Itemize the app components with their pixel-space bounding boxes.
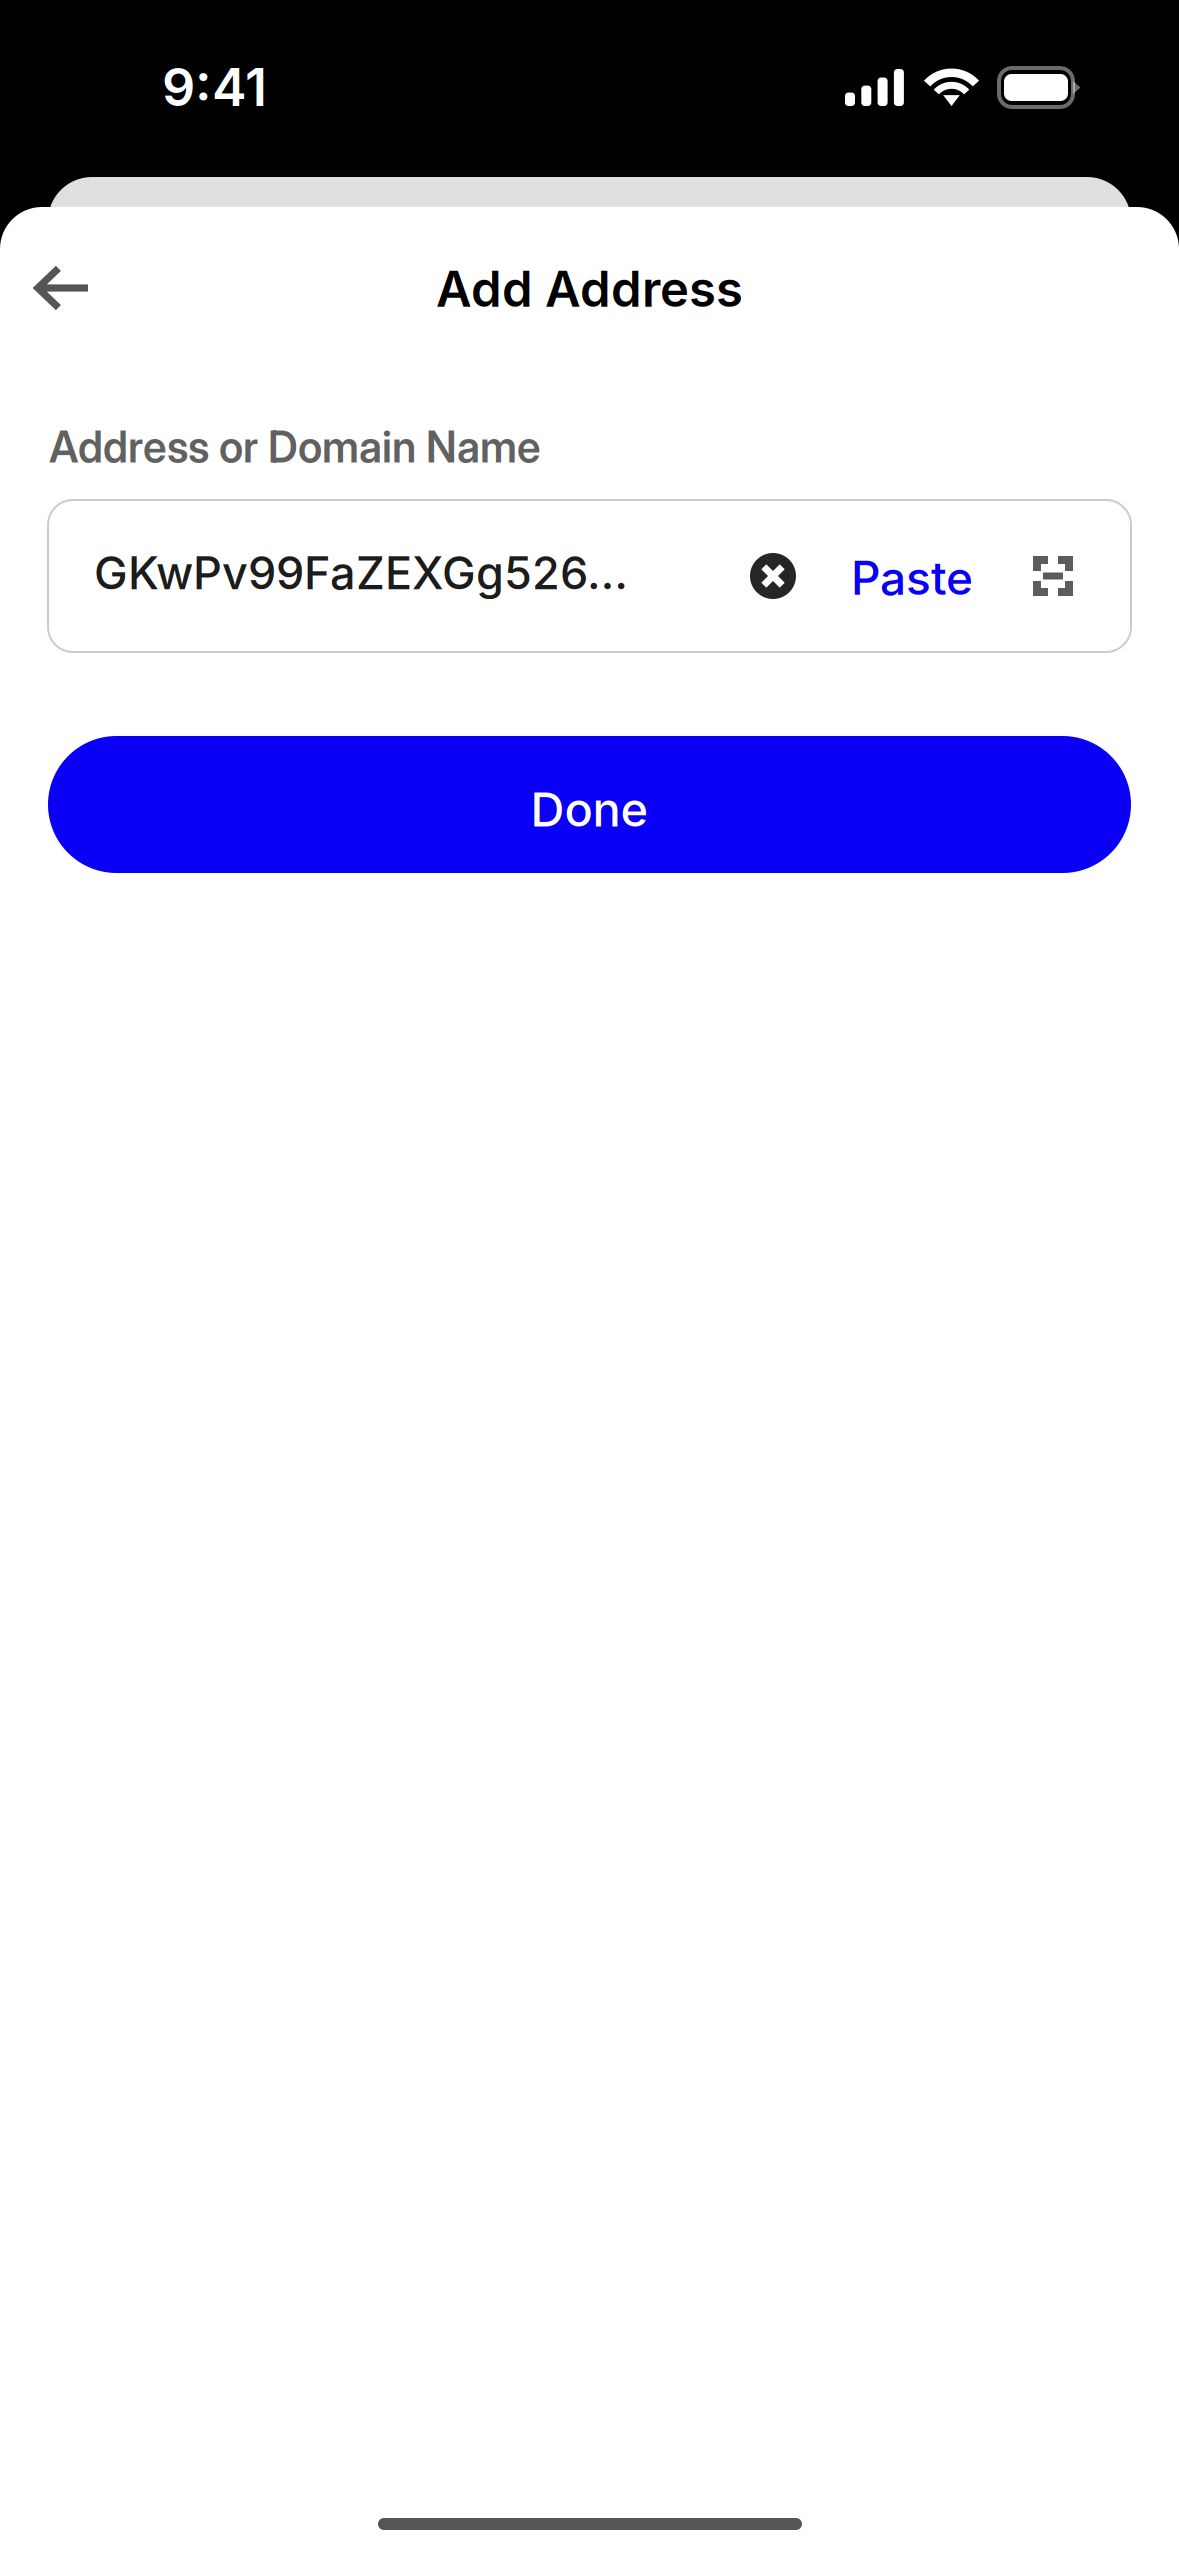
button[interactable]: Done bbox=[48, 736, 1131, 873]
button[interactable]: Scan QR code bbox=[1007, 530, 1099, 622]
button[interactable]: Back bbox=[7, 233, 117, 343]
staticText: Add Address bbox=[436, 259, 743, 319]
button[interactable]: Clear text bbox=[727, 530, 819, 622]
staticText: Done bbox=[530, 781, 648, 838]
staticText: Paste bbox=[851, 550, 973, 606]
staticText: GKwPv99FaZEXGg526… bbox=[94, 546, 628, 600]
staticText: Address or Domain Name bbox=[49, 421, 541, 473]
staticText: 9:41 bbox=[162, 55, 267, 118]
button[interactable]: Paste bbox=[832, 532, 992, 624]
